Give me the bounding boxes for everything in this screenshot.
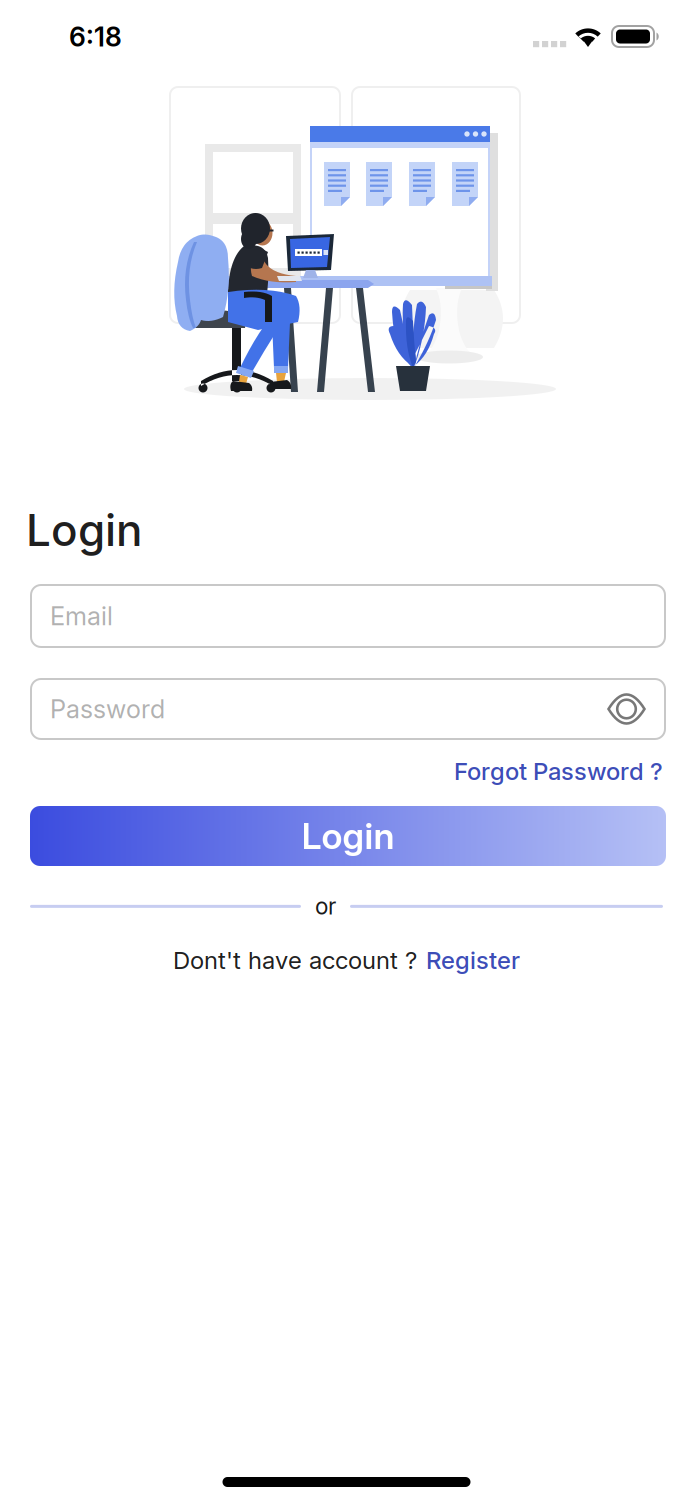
- staticText: Password: [50, 694, 165, 724]
- staticText: Dont't have account ?: [173, 946, 417, 974]
- button[interactable]: Login: [30, 806, 666, 866]
- staticText: or: [315, 893, 336, 920]
- staticText: 6:18: [69, 21, 122, 52]
- staticText: Login: [26, 504, 142, 556]
- button[interactable]: Email: [31, 585, 665, 647]
- button[interactable]: Forgot Password ?: [454, 757, 663, 785]
- button[interactable]: Password: [31, 679, 665, 739]
- staticText: Email: [50, 601, 113, 631]
- staticText: Forgot Password ?: [454, 757, 663, 785]
- button[interactable]: Register: [426, 946, 520, 974]
- staticText: Login: [301, 815, 394, 857]
- staticText: Register: [426, 946, 520, 974]
